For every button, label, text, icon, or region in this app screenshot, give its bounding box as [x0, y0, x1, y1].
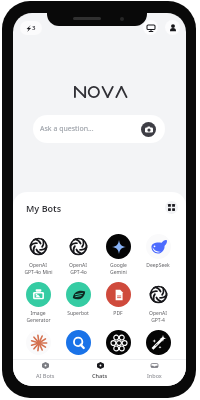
button[interactable] — [98, 330, 138, 355]
staticText: DeepSeek — [146, 262, 170, 269]
button[interactable]: OpenAI — [58, 234, 98, 276]
button[interactable]: Image — [18, 282, 58, 324]
button[interactable]: Superbot — [58, 282, 98, 317]
button[interactable]: Screen share — [143, 20, 158, 35]
staticText: OpenAI — [149, 310, 167, 317]
button[interactable]: OpenAI — [18, 234, 58, 276]
staticText: GPT-4 — [151, 317, 165, 324]
button[interactable]: Chats — [73, 362, 127, 379]
button[interactable]: Camera — [141, 122, 156, 137]
staticText: Superbot — [67, 310, 89, 317]
staticText: Ask a question... — [40, 124, 94, 134]
staticText: 3 — [32, 24, 36, 32]
staticText: GPT-4o — [70, 269, 87, 276]
button[interactable]: Profile — [165, 20, 180, 35]
button[interactable]: 3 — [20, 21, 42, 35]
button[interactable] — [138, 330, 178, 355]
staticText: GPT-4o Mini — [24, 269, 53, 276]
button[interactable]: Ask a question... — [33, 115, 165, 143]
staticText: Google — [110, 262, 127, 269]
button[interactable]: DeepSeek — [138, 234, 178, 269]
button[interactable]: Grid layout — [165, 201, 178, 214]
button[interactable]: Inbox — [127, 362, 181, 379]
staticText: Image — [30, 310, 46, 317]
staticText: My Bots — [26, 202, 62, 214]
button[interactable]: Google — [98, 234, 138, 276]
staticText: AI Bots — [36, 372, 55, 379]
staticText: OpenAI — [69, 262, 87, 269]
button[interactable]: OpenAI — [138, 282, 178, 324]
button[interactable] — [18, 330, 58, 355]
staticText: PDF — [113, 310, 123, 317]
staticText: Chats — [92, 372, 108, 379]
staticText: Gemini — [110, 269, 127, 276]
staticText: Generator — [26, 317, 51, 324]
staticText: OpenAI — [29, 262, 47, 269]
staticText: Inbox — [147, 372, 162, 379]
button[interactable] — [58, 330, 98, 355]
button[interactable]: AI Bots — [18, 362, 73, 379]
button[interactable]: PDF — [98, 282, 138, 317]
